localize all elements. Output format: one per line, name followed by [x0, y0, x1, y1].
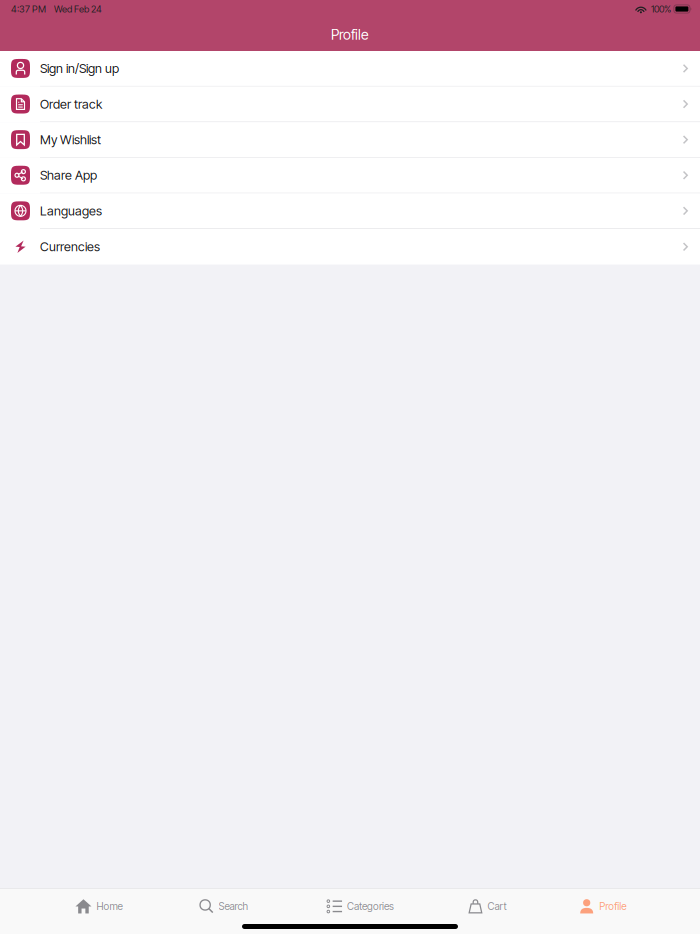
- button[interactable]: My Wishlist: [0, 122, 700, 158]
- button[interactable]: Profile: [0, 18, 700, 51]
- staticText: Wed Feb 24: [54, 3, 102, 15]
- staticText: Cart: [487, 900, 506, 912]
- button[interactable]: Home: [0, 889, 161, 924]
- staticText: My Wishlist: [40, 132, 101, 147]
- button[interactable]: Profile: [543, 889, 700, 924]
- button[interactable]: Share App: [0, 158, 700, 193]
- button[interactable]: Languages: [0, 193, 700, 229]
- button[interactable]: Cart: [431, 889, 543, 924]
- button[interactable]: Sign in/Sign up: [0, 51, 700, 87]
- staticText: 100%: [651, 3, 671, 15]
- button[interactable]: Search: [161, 889, 288, 924]
- staticText: Profile: [331, 26, 369, 43]
- staticText: Currencies: [40, 239, 100, 254]
- button[interactable]: Categories: [288, 889, 431, 924]
- staticText: 4:37 PM: [11, 3, 46, 15]
- staticText: Home: [96, 900, 122, 912]
- staticText: Categories: [347, 900, 394, 912]
- staticText: Languages: [40, 203, 102, 218]
- staticText: Sign in/Sign up: [40, 61, 119, 76]
- staticText: Order track: [40, 96, 102, 112]
- button[interactable]: Order track: [0, 87, 700, 122]
- staticText: Profile: [599, 900, 626, 912]
- button[interactable]: Currencies: [0, 229, 700, 264]
- staticText: Share App: [40, 168, 97, 183]
- staticText: Search: [219, 900, 249, 912]
